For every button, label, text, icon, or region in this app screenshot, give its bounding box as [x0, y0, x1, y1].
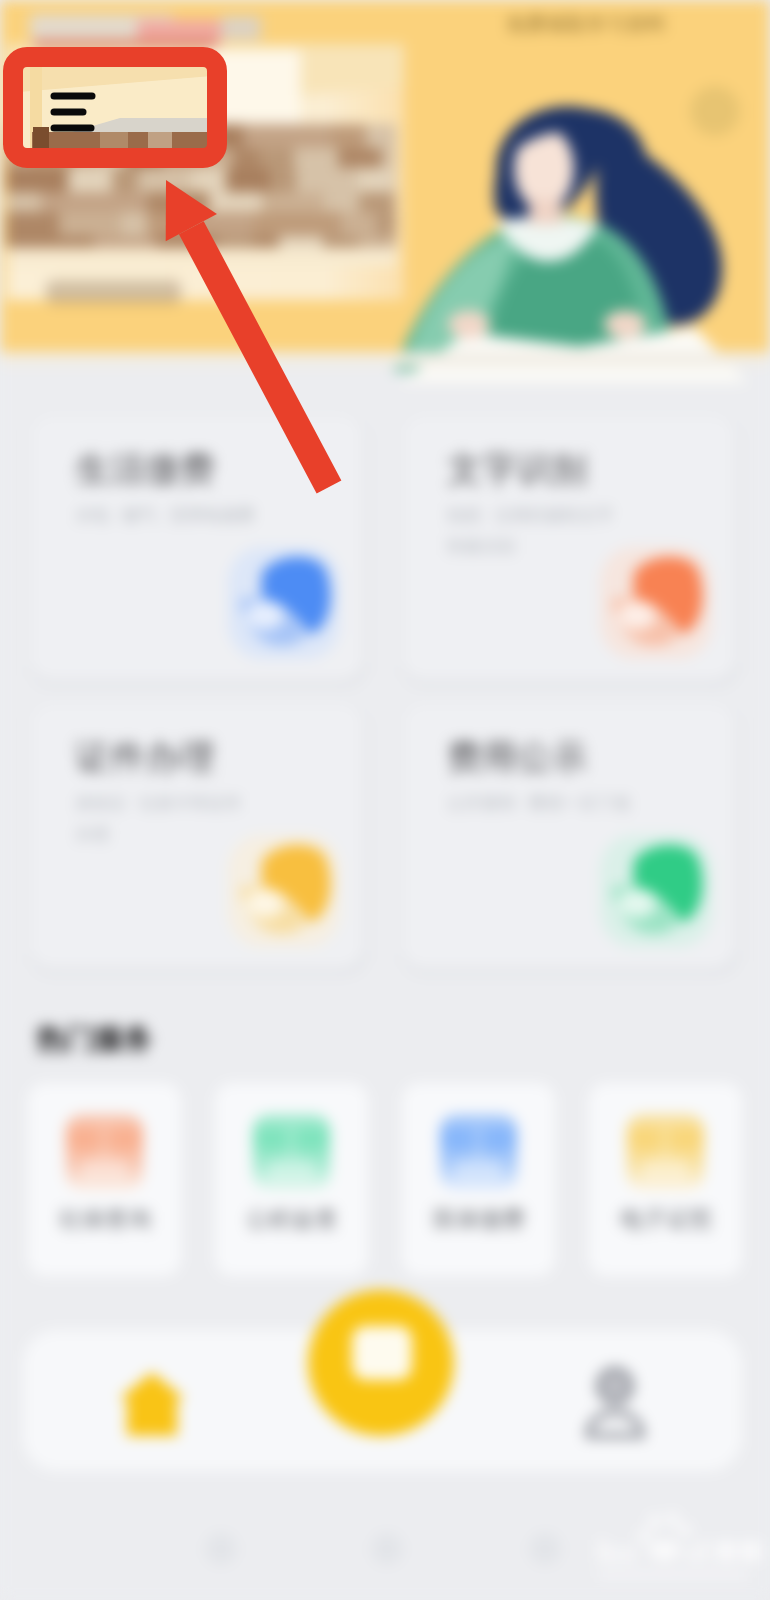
button[interactable]: 生活缴费	[30, 415, 364, 681]
staticText: 电子证照	[620, 1205, 712, 1234]
button[interactable]: 社保查询	[28, 1083, 181, 1276]
button[interactable]: Home	[92, 1358, 212, 1450]
button[interactable]: 证件办理	[30, 703, 364, 969]
button[interactable]: 费用公示	[402, 703, 736, 969]
staticText: 社保查询	[59, 1205, 151, 1234]
staticText: 热门服务	[36, 1021, 152, 1058]
staticText: 证件办理	[75, 735, 215, 779]
button[interactable]: 公积金查	[215, 1083, 368, 1276]
staticText: 文字识别	[447, 447, 587, 491]
staticText: 生活缴费	[75, 447, 215, 491]
button[interactable]: Scan	[308, 1290, 454, 1436]
staticText: 拍照 · 文档扫描转文字 快速识别	[447, 503, 614, 557]
staticText: 费用公示	[447, 735, 587, 779]
button[interactable]: Profile	[555, 1358, 675, 1446]
button[interactable]: 文字识别	[402, 415, 736, 681]
button[interactable]: 医保缴费	[402, 1083, 555, 1276]
staticText: 免费领取学习资料	[506, 12, 666, 37]
staticText: 公开透明 · 费用一目了然	[447, 791, 631, 814]
staticText: 身份证 · 社保卡等证件 办理	[75, 791, 242, 845]
button[interactable]: 电子证照	[589, 1083, 742, 1276]
staticText: 水电 · 燃气 · 宽带电视费	[75, 503, 255, 526]
staticText: 医保缴费	[433, 1205, 525, 1234]
button[interactable]	[6, 10, 404, 340]
staticText: 公积金查	[246, 1205, 338, 1234]
